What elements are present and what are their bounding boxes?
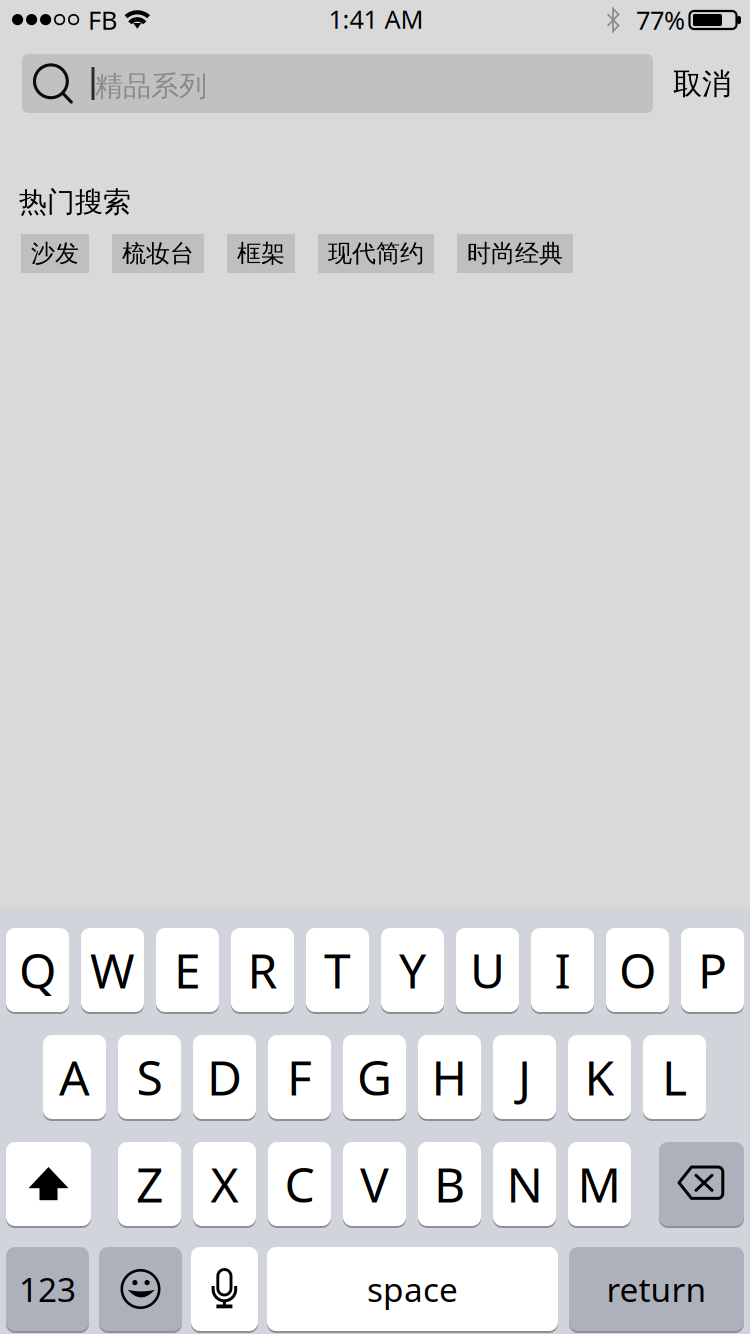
button[interactable]: V [343,1141,406,1227]
staticText: X [210,1152,238,1216]
button[interactable]: U [456,927,519,1013]
staticText: U [470,938,505,1002]
button[interactable]: L [643,1034,706,1120]
button[interactable]: Y [381,927,444,1013]
button[interactable]: R [231,927,294,1013]
button[interactable]: K [568,1034,631,1120]
button[interactable]: T [306,927,369,1013]
button[interactable]: return [569,1246,744,1332]
button[interactable]: Emoji [99,1246,182,1332]
button[interactable]: 123 [6,1246,89,1332]
button[interactable]: Shift [6,1141,91,1227]
staticText: FB [88,3,117,37]
staticText: 框架 [237,239,285,268]
button[interactable]: C [268,1141,331,1227]
staticText: 取消 [673,66,731,102]
button[interactable]: B [418,1141,481,1227]
staticText: D [207,1045,242,1109]
staticText: A [59,1045,90,1109]
staticText: 沙发 [31,239,79,268]
staticText: S [136,1045,162,1109]
staticText: P [698,938,727,1002]
staticText: space [367,1267,458,1311]
button[interactable]: N [493,1141,556,1227]
staticText: 时尚经典 [467,239,563,268]
staticText: 精品系列 [95,69,207,103]
staticText: L [662,1045,687,1109]
staticText: 1:41 AM [328,2,423,36]
button[interactable]: space [267,1246,558,1332]
button[interactable]: 梳妆台 [112,234,204,273]
button[interactable]: I [531,927,594,1013]
button[interactable]: D [193,1034,256,1120]
button[interactable]: E [156,927,219,1013]
staticText: V [360,1152,389,1216]
button[interactable]: 现代简约 [318,234,434,273]
button[interactable]: G [343,1034,406,1120]
staticText: J [518,1045,531,1109]
staticText: F [287,1045,312,1109]
button[interactable]: Q [6,927,69,1013]
button[interactable]: X [193,1141,256,1227]
staticText: T [324,938,351,1002]
staticText: 现代简约 [328,239,424,268]
button[interactable]: M [568,1141,631,1227]
staticText: O [619,938,656,1002]
button[interactable]: P [681,927,744,1013]
staticText: Z [136,1152,163,1216]
staticText: 热门搜索 [19,185,131,219]
staticText: M [577,1152,621,1216]
button[interactable]: 时尚经典 [457,234,573,273]
staticText: N [506,1152,542,1216]
staticText: Q [19,938,56,1002]
button[interactable]: O [606,927,669,1013]
button[interactable]: W [81,927,144,1013]
staticText: G [357,1045,392,1109]
staticText: R [247,938,277,1002]
button[interactable]: 沙发 [21,234,89,273]
staticText: E [174,938,201,1002]
staticText: I [554,938,570,1002]
staticText: return [606,1267,706,1311]
button[interactable]: F [268,1034,331,1120]
button[interactable]: Dictation [191,1246,258,1332]
button[interactable]: S [118,1034,181,1120]
button[interactable]: Z [118,1141,181,1227]
staticText: 77% [636,3,685,37]
button[interactable]: A [43,1034,106,1120]
staticText: H [431,1045,467,1109]
button[interactable]: Delete [659,1141,744,1227]
staticText: 梳妆台 [122,239,194,268]
staticText: 123 [19,1267,76,1311]
button[interactable]: 框架 [227,234,295,273]
staticText: C [284,1152,314,1216]
staticText: B [434,1152,465,1216]
button[interactable]: 精品系列 [22,54,653,113]
staticText: K [584,1045,614,1109]
button[interactable]: J [493,1034,556,1120]
button[interactable]: 取消 [662,59,742,109]
staticText: Y [399,938,426,1002]
staticText: W [90,938,135,1002]
button[interactable]: H [418,1034,481,1120]
